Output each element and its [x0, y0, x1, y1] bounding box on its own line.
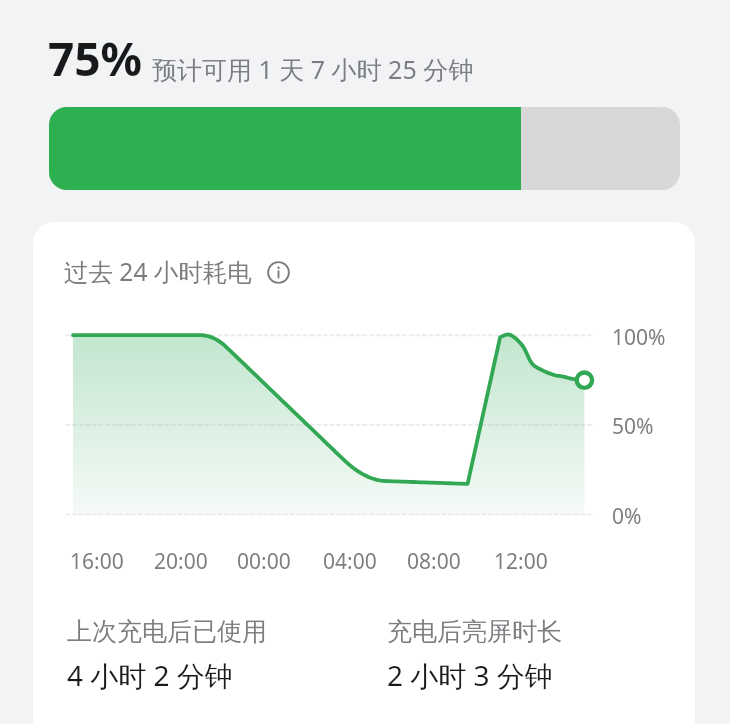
staticText: 16:00	[70, 547, 124, 576]
staticText: 50%	[612, 412, 654, 441]
staticText: 00:00	[237, 547, 291, 576]
staticText: 04:00	[323, 547, 377, 576]
button[interactable]: Info about battery usage	[267, 261, 290, 284]
staticText: 100%	[612, 323, 666, 352]
staticText: 充电后亮屏时长	[387, 616, 562, 647]
staticText: 上次充电后已使用	[67, 616, 267, 647]
button[interactable]: 上次充电后已使用	[67, 616, 267, 694]
staticText: 20:00	[154, 547, 208, 576]
staticText: 12:00	[494, 547, 548, 576]
staticText: 75%	[48, 27, 143, 90]
button[interactable]: 过去 24 小时耗电	[64, 255, 290, 288]
staticText: 过去 24 小时耗电	[64, 255, 252, 288]
staticText: 0%	[612, 502, 642, 531]
button[interactable]: Battery level 75 percent	[49, 107, 680, 190]
staticText: 08:00	[407, 547, 461, 576]
button[interactable]: 充电后亮屏时长	[387, 616, 562, 694]
staticText: 2 小时 3 分钟	[387, 656, 553, 694]
other: Battery level over the past 24 hours	[33, 222, 695, 562]
staticText: 4 小时 2 分钟	[67, 656, 233, 694]
staticText: 预计可用 1 天 7 小时 25 分钟	[152, 52, 474, 86]
